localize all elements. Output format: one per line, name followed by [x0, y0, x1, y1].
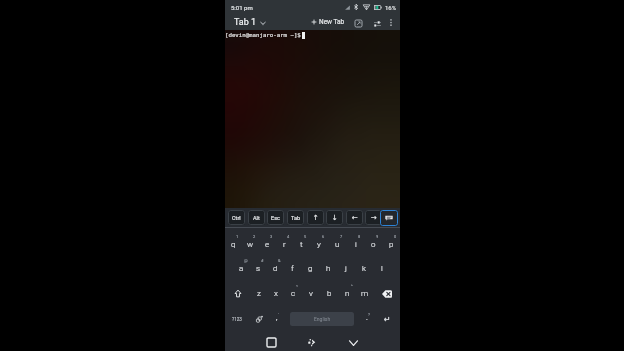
button[interactable]: &	[267, 256, 284, 281]
button[interactable]: z	[250, 281, 267, 306]
button[interactable]: f	[284, 256, 301, 281]
button[interactable]: Ctrl	[228, 210, 245, 225]
button[interactable]: h	[319, 256, 337, 281]
button[interactable]: j	[337, 256, 355, 281]
staticText: ,	[276, 314, 278, 322]
button[interactable]: Keyboard settings	[372, 18, 383, 29]
button[interactable]: up	[307, 210, 324, 225]
button[interactable]: 3	[259, 232, 276, 256]
staticText: #	[261, 258, 264, 263]
staticText: 4	[287, 234, 290, 239]
button[interactable]: right	[365, 210, 382, 225]
button[interactable]: 2	[242, 232, 259, 256]
button[interactable]: 0	[382, 232, 400, 256]
button[interactable]: b	[320, 281, 338, 306]
staticText: p	[389, 240, 394, 249]
button[interactable]: k	[355, 256, 373, 281]
button[interactable]: Switch language	[250, 308, 268, 330]
staticText: Tab 1	[234, 17, 257, 28]
staticText: s	[256, 264, 261, 273]
button[interactable]: 9	[364, 232, 382, 256]
button[interactable]: ?123	[228, 308, 246, 330]
staticText: l	[381, 264, 383, 273]
staticText: 5	[304, 234, 307, 239]
button[interactable]: l	[373, 256, 391, 281]
button[interactable]: Recent apps	[264, 335, 279, 350]
button[interactable]: Back	[346, 335, 361, 350]
staticText: n	[345, 289, 350, 298]
staticText: j	[345, 264, 347, 273]
button[interactable]: ^	[338, 281, 356, 306]
staticText: z	[257, 289, 261, 298]
staticText: v	[309, 289, 313, 298]
button[interactable]: Esc	[267, 210, 284, 225]
button[interactable]: g	[301, 256, 319, 281]
staticText: ?123	[232, 317, 242, 322]
staticText: x	[274, 289, 278, 298]
button[interactable]: x	[267, 281, 284, 306]
button[interactable]: Alt	[248, 210, 265, 225]
staticText: 1	[236, 234, 239, 239]
staticText: English	[314, 316, 331, 322]
staticText: h	[326, 264, 331, 273]
staticText: u	[335, 240, 340, 249]
staticText: b	[327, 289, 332, 298]
staticText: t	[300, 240, 303, 249]
button[interactable]: More options	[385, 17, 396, 28]
button[interactable]: Toggle fullscreen	[353, 18, 364, 29]
button[interactable]: v	[302, 281, 320, 306]
staticText: 0	[394, 234, 397, 239]
button[interactable]: '	[269, 308, 284, 330]
staticText: 16%	[385, 4, 397, 11]
button[interactable]: 5	[293, 232, 310, 256]
staticText: 3	[270, 234, 273, 239]
button[interactable]: Shift	[225, 281, 250, 306]
staticText: @	[244, 258, 248, 263]
button[interactable]: @	[233, 256, 250, 281]
button[interactable]: Toggle keyboard	[380, 210, 398, 226]
staticText: Tab	[291, 215, 301, 221]
button[interactable]: left	[346, 210, 363, 225]
button[interactable]: Enter	[379, 308, 396, 330]
button[interactable]: English	[290, 312, 354, 326]
button[interactable]: 7	[328, 232, 346, 256]
button[interactable]: down	[326, 210, 343, 225]
button[interactable]: Home	[304, 335, 319, 350]
staticText: 9	[376, 234, 379, 239]
staticText: Esc	[271, 215, 280, 221]
staticText: o	[371, 240, 376, 249]
staticText: r	[283, 240, 286, 249]
staticText: New Tab	[319, 18, 345, 26]
button[interactable]: m	[356, 281, 374, 306]
staticText: y	[317, 240, 321, 249]
button[interactable]: Tab	[287, 210, 304, 225]
staticText: [devin@manjaro-arm ~]$	[225, 32, 301, 39]
button[interactable]: Backspace	[374, 281, 400, 306]
staticText: 2	[253, 234, 256, 239]
staticText: ↓	[332, 214, 338, 222]
staticText: Alt	[253, 215, 260, 221]
button[interactable]: ?	[359, 308, 374, 330]
staticText: w	[247, 240, 254, 249]
button[interactable]: 1	[225, 232, 242, 256]
staticText: &	[278, 258, 281, 263]
button[interactable]: 4	[276, 232, 293, 256]
staticText: k	[362, 264, 366, 273]
staticText: Ctrl	[232, 215, 241, 221]
staticText: f	[291, 264, 294, 273]
button[interactable]: #	[250, 256, 267, 281]
staticText: ?	[368, 312, 370, 317]
button[interactable]: <	[284, 281, 302, 306]
staticText: c	[291, 289, 296, 298]
button[interactable]: Tab 1	[232, 16, 268, 29]
staticText: .	[366, 314, 368, 322]
button[interactable]: New Tab	[310, 17, 346, 27]
staticText: i	[355, 240, 357, 249]
staticText: 6	[322, 234, 325, 239]
staticText: 5:01 pm	[231, 4, 253, 11]
staticText: q	[231, 240, 236, 249]
button[interactable]: 8	[346, 232, 364, 256]
staticText: 7	[340, 234, 343, 239]
button[interactable]: 6	[310, 232, 328, 256]
staticText: a	[239, 264, 244, 273]
